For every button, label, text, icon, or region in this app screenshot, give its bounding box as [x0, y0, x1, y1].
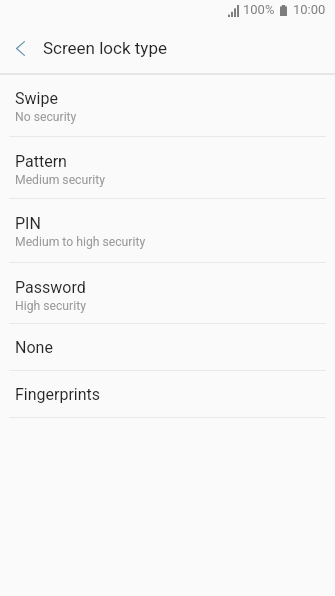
button[interactable]: Swipe [0, 75, 335, 137]
staticText: High security [15, 299, 86, 313]
button[interactable]: Password [0, 263, 335, 324]
staticText: Password [15, 278, 86, 297]
staticText: Medium to high security [15, 235, 146, 249]
staticText: 10:00 [293, 2, 326, 17]
button[interactable]: PIN [0, 199, 335, 263]
button[interactable]: None [0, 324, 335, 371]
button[interactable]: Navigate up [0, 22, 40, 75]
staticText: Screen lock type [43, 38, 167, 58]
staticText: Medium security [15, 173, 106, 187]
staticText: Swipe [15, 89, 58, 108]
staticText: Fingerprints [15, 385, 101, 404]
button[interactable]: Pattern [0, 137, 335, 199]
staticText: None [15, 338, 53, 357]
button[interactable]: Fingerprints [0, 371, 335, 418]
staticText: PIN [15, 214, 41, 233]
staticText: No security [15, 110, 77, 124]
staticText: 100% [243, 2, 275, 17]
staticText: Pattern [15, 152, 67, 171]
